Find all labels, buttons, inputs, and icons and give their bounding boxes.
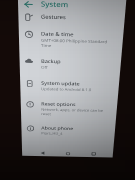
staticText: Reset options — [41, 101, 77, 108]
button[interactable]: Backup — [19, 50, 122, 74]
button[interactable]: Back — [36, 148, 48, 158]
staticText: Gestures — [41, 13, 67, 21]
button[interactable]: System update — [20, 72, 120, 95]
button[interactable]: Navigate up — [21, 0, 35, 10]
staticText: Date & time — [41, 30, 74, 38]
button[interactable]: Home — [61, 148, 74, 158]
staticText: Backup — [41, 58, 62, 65]
button[interactable]: Reset options — [20, 93, 118, 115]
button[interactable]: Gestures — [18, 4, 126, 30]
staticText: Updated to Android 8.1.0 — [41, 86, 92, 92]
staticText: Off — [41, 64, 48, 70]
staticText: About phone — [41, 125, 74, 131]
staticText: Network, apps, or device can be reset — [41, 107, 104, 117]
staticText: System update — [41, 80, 80, 87]
button[interactable]: Recent apps — [87, 149, 100, 159]
staticText: System — [41, 0, 69, 9]
button[interactable]: Date & time — [18, 22, 124, 47]
button[interactable]: About phone — [21, 118, 116, 139]
staticText: Piars_HD_4 — [41, 131, 63, 135]
staticText: GMT+08:00 Philippine Standard Time — [41, 37, 109, 49]
